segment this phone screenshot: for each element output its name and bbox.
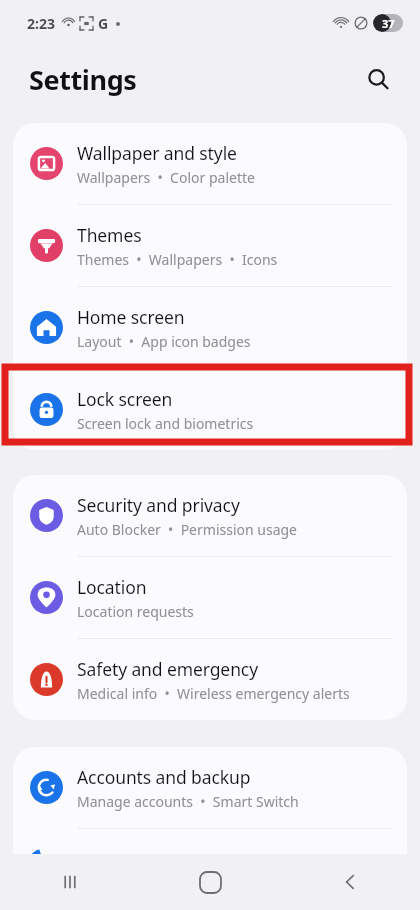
button[interactable]: Security and privacy (13, 475, 407, 556)
button[interactable]: Themes (13, 205, 407, 286)
button[interactable]: Accounts and backup (13, 747, 407, 828)
staticText: Layout • App icon badges (77, 332, 251, 351)
staticText: Wallpapers • Color palette (77, 168, 255, 187)
button[interactable]: Recents (0, 854, 140, 910)
button[interactable]: Lock screen (13, 369, 407, 450)
staticText: Themes • Wallpapers • Icons (77, 250, 278, 269)
staticText: Safety and emergency (77, 657, 258, 681)
button[interactable]: Home screen (13, 287, 407, 368)
staticText: Location requests (77, 602, 194, 621)
button[interactable]: Home (140, 854, 280, 910)
staticText: 2:23 (27, 14, 55, 33)
button[interactable]: Location (13, 557, 407, 638)
staticText: Medical info • Wireless emergency alerts (77, 684, 350, 703)
staticText: Screen lock and biometrics (77, 414, 254, 433)
button[interactable]: Search (358, 59, 398, 99)
staticText: Wallpaper and style (77, 141, 237, 165)
staticText: Home screen (77, 305, 185, 329)
button[interactable]: Wallpaper and style (13, 123, 407, 204)
staticText: Security and privacy (77, 493, 240, 517)
staticText: Manage accounts • Smart Switch (77, 792, 299, 811)
staticText: G (98, 14, 109, 33)
button[interactable]: Safety and emergency (13, 639, 407, 720)
staticText: 37 (382, 16, 395, 31)
button[interactable]: Back (280, 854, 420, 910)
staticText: Auto Blocker • Permission usage (77, 520, 297, 539)
staticText: Lock screen (77, 387, 173, 411)
staticText: Location (77, 575, 147, 599)
staticText: Settings (29, 61, 137, 98)
staticText: Themes (77, 223, 142, 247)
staticText: Accounts and backup (77, 765, 251, 789)
button[interactable]: Google (13, 829, 407, 910)
